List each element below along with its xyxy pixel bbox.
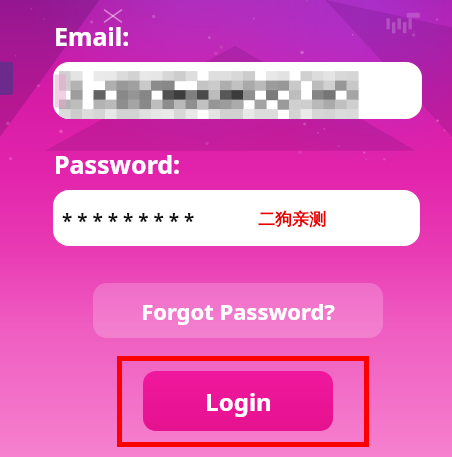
button[interactable]: * * * * * * * * * <box>53 190 420 246</box>
staticText: Login <box>205 385 272 418</box>
staticText: Password: <box>54 147 181 181</box>
button[interactable]: Forgot Password? <box>93 283 383 338</box>
staticText: Email: <box>54 19 130 53</box>
staticText: 二狗亲测 <box>258 209 326 230</box>
button[interactable] <box>53 62 422 119</box>
staticText: Forgot Password? <box>141 296 335 326</box>
button[interactable]: Login <box>143 371 333 431</box>
staticText: * * * * * * * * * <box>62 208 195 234</box>
